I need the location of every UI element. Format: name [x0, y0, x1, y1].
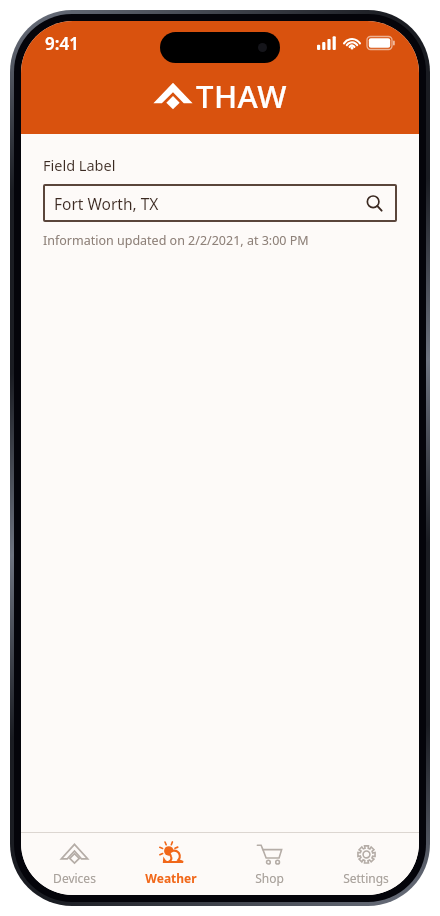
button[interactable]: Settings: [322, 839, 410, 890]
staticText: Shop: [255, 870, 284, 886]
button[interactable]: Devices: [30, 839, 118, 890]
button[interactable]: Fort Worth, TX: [43, 184, 397, 222]
button[interactable]: Shop: [225, 839, 313, 890]
staticText: Weather: [145, 870, 197, 886]
staticText: 9:41: [45, 32, 79, 55]
button[interactable]: Search: [362, 191, 386, 215]
staticText: THAW: [196, 75, 287, 117]
staticText: Information updated on 2/2/2021, at 3:00…: [43, 232, 309, 249]
staticText: Settings: [343, 870, 389, 886]
button[interactable]: Weather: [127, 839, 215, 890]
staticText: Field Label: [43, 155, 116, 175]
staticText: Fort Worth, TX: [54, 193, 159, 214]
staticText: Devices: [53, 870, 96, 886]
